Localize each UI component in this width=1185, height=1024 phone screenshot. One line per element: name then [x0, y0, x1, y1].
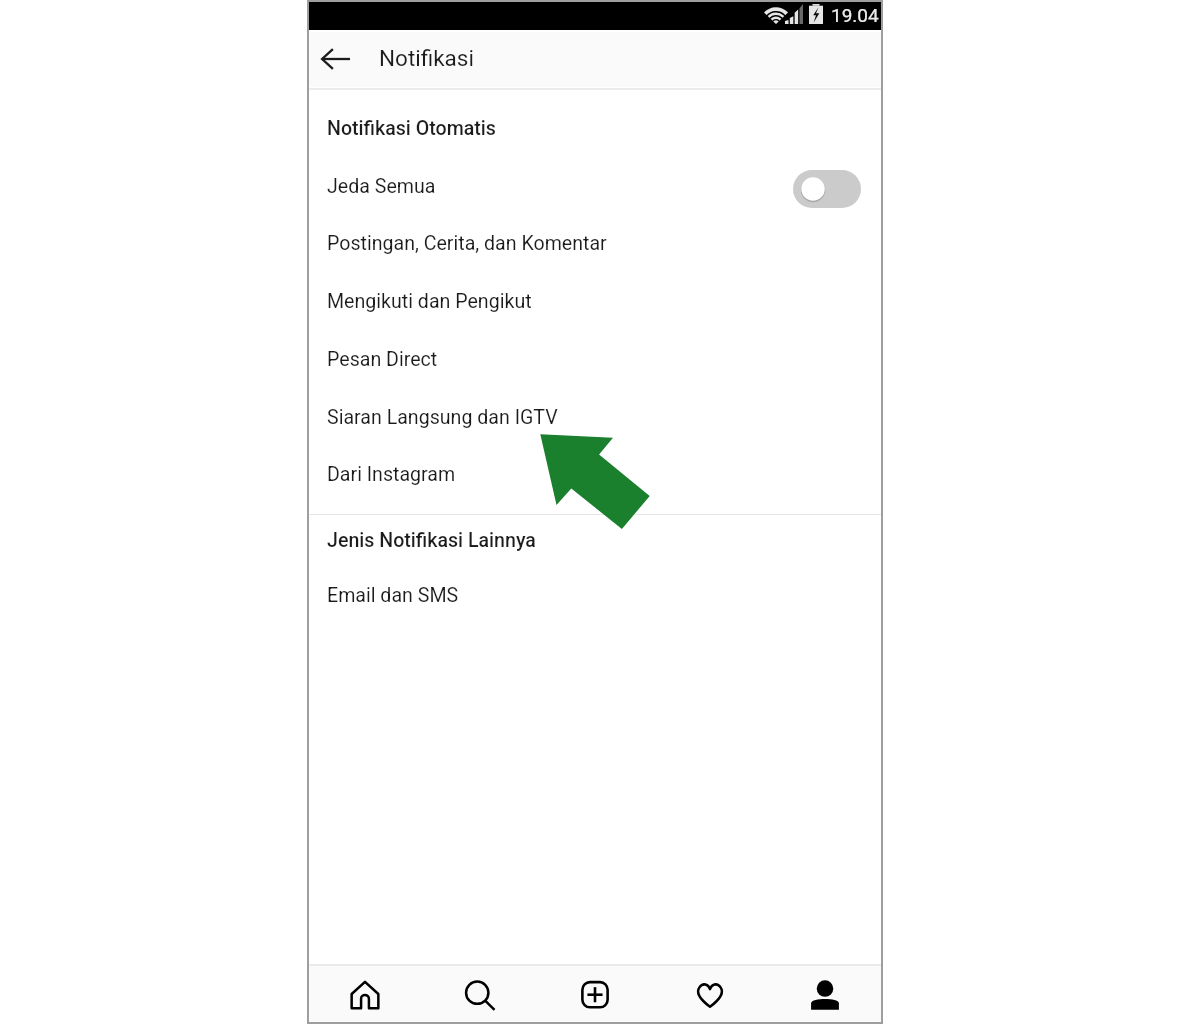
button[interactable]: Email dan SMS	[309, 566, 881, 623]
staticText: Postingan, Cerita, dan Komentar	[327, 232, 607, 255]
button[interactable]: Jeda Semua	[309, 157, 881, 214]
staticText: Mengikuti dan Pengikut	[327, 290, 532, 313]
staticText: Siaran Langsung dan IGTV	[327, 406, 558, 429]
button[interactable]: Activity	[653, 966, 767, 1022]
staticText: Pesan Direct	[327, 348, 438, 371]
button[interactable]: Home	[308, 966, 422, 1022]
staticText: Jeda Semua	[327, 175, 436, 198]
button[interactable]: Profile	[768, 966, 882, 1022]
staticText: Notifikasi Otomatis	[327, 117, 496, 140]
button[interactable]: Mengikuti dan Pengikut	[309, 272, 881, 329]
button[interactable]: Siaran Langsung dan IGTV	[309, 388, 881, 445]
button[interactable]: Pesan Direct	[309, 330, 881, 387]
button[interactable]: Notifikasi Otomatis	[309, 99, 881, 156]
staticText: 19.04	[831, 4, 879, 26]
button[interactable]: Back	[313, 36, 358, 82]
button[interactable]: Search	[423, 966, 537, 1022]
staticText: Notifikasi	[379, 45, 474, 71]
button[interactable]: Postingan, Cerita, dan Komentar	[309, 214, 881, 271]
staticText: Jenis Notifikasi Lainnya	[327, 529, 536, 552]
button[interactable]: New post	[538, 966, 652, 1022]
button[interactable]: Dari Instagram	[309, 445, 881, 502]
staticText: Email dan SMS	[327, 584, 459, 607]
button[interactable]: Jenis Notifikasi Lainnya	[309, 511, 881, 568]
staticText: Dari Instagram	[327, 463, 456, 486]
button[interactable]: Jeda Semua, off	[793, 170, 861, 208]
